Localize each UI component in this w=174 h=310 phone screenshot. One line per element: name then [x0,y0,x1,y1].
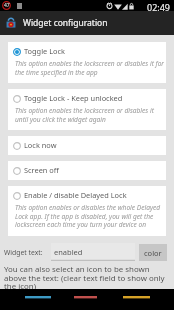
button[interactable]: enabled [51,243,135,261]
staticText: Lock now [24,140,57,150]
button[interactable]: Lock now [8,136,166,155]
staticText: Widget text: [4,248,43,257]
staticText: 02:49 [147,1,171,12]
staticText: Toggle Lock - Keep unlocked [24,93,123,103]
button[interactable]: Toggle Lock - Keep unlocked [8,89,166,130]
button[interactable]: Enable / disable Delayed Lock [8,186,166,236]
staticText: Enable / disable Delayed Lock [24,190,127,200]
button[interactable]: Toggle Lock [8,42,166,83]
staticText: This option enables the lockscreen or di… [15,106,166,123]
staticText: color [144,248,162,258]
button[interactable]: color [139,244,167,261]
button[interactable]: Screen off [8,161,166,180]
staticText: This option enables the lockscreen or di… [15,59,166,76]
staticText: 47 [4,2,10,9]
staticText: Toggle Lock [24,46,65,56]
staticText: Widget configuration [23,17,108,29]
staticText: You can also select an icon to be shown … [4,264,171,291]
staticText: enabled [54,247,83,257]
staticText: This option enables or disables the whol… [15,203,166,228]
other: App icon [5,17,17,29]
staticText: Screen off [24,165,59,175]
